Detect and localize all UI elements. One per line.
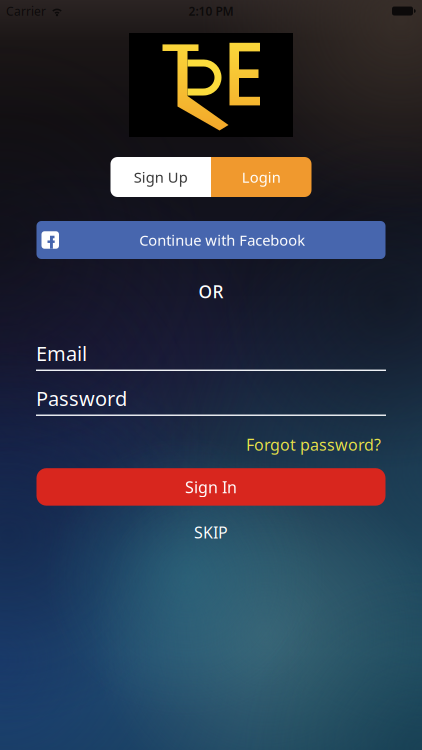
staticText: Forgot password? <box>246 434 381 455</box>
staticText: OR <box>198 280 223 303</box>
button[interactable]: Email <box>36 340 386 371</box>
button[interactable]: Sign Up <box>110 157 211 197</box>
staticText: Sign Up <box>134 167 188 187</box>
button[interactable]: Sign In <box>36 468 385 506</box>
button[interactable]: Login <box>211 157 311 197</box>
staticText: Carrier <box>6 3 46 19</box>
staticText: Login <box>242 167 281 187</box>
button[interactable]: Continue with Facebook <box>36 221 385 259</box>
staticText: 2:10 PM <box>188 3 233 19</box>
staticText: Password <box>36 385 127 412</box>
staticText: Continue with Facebook <box>139 230 305 250</box>
button[interactable]: Forgot password? <box>246 434 381 455</box>
staticText: Email <box>36 340 87 367</box>
button[interactable]: Password <box>36 385 386 416</box>
staticText: SKIP <box>194 522 228 543</box>
button[interactable]: SKIP <box>194 522 228 543</box>
staticText: Sign In <box>185 476 237 497</box>
